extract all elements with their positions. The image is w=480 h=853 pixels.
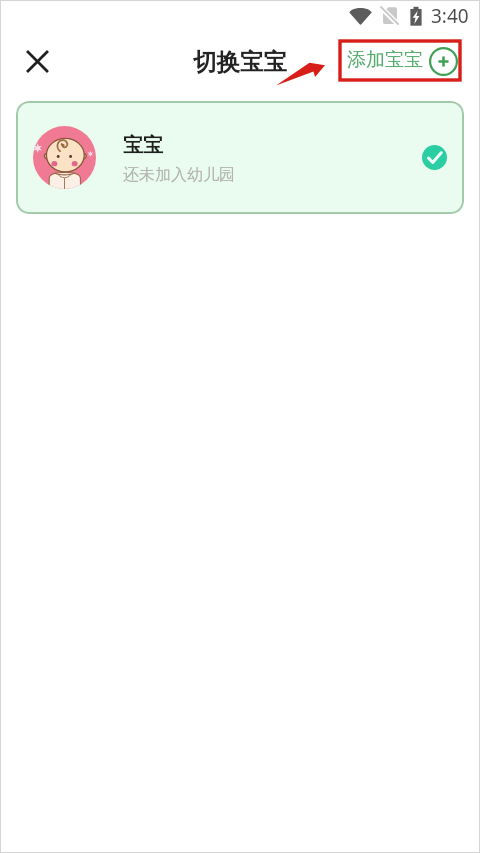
staticText: 3:40 — [431, 3, 469, 29]
staticText: 添加宝宝 — [347, 48, 423, 72]
staticText: 切换宝宝 — [193, 47, 287, 77]
staticText: 宝宝 — [123, 133, 163, 158]
button[interactable]: Close — [17, 41, 57, 81]
button[interactable]: 添加宝宝 — [341, 41, 460, 81]
staticText: 还未加入幼儿园 — [123, 165, 235, 185]
button[interactable]: 宝宝 — [16, 101, 464, 214]
